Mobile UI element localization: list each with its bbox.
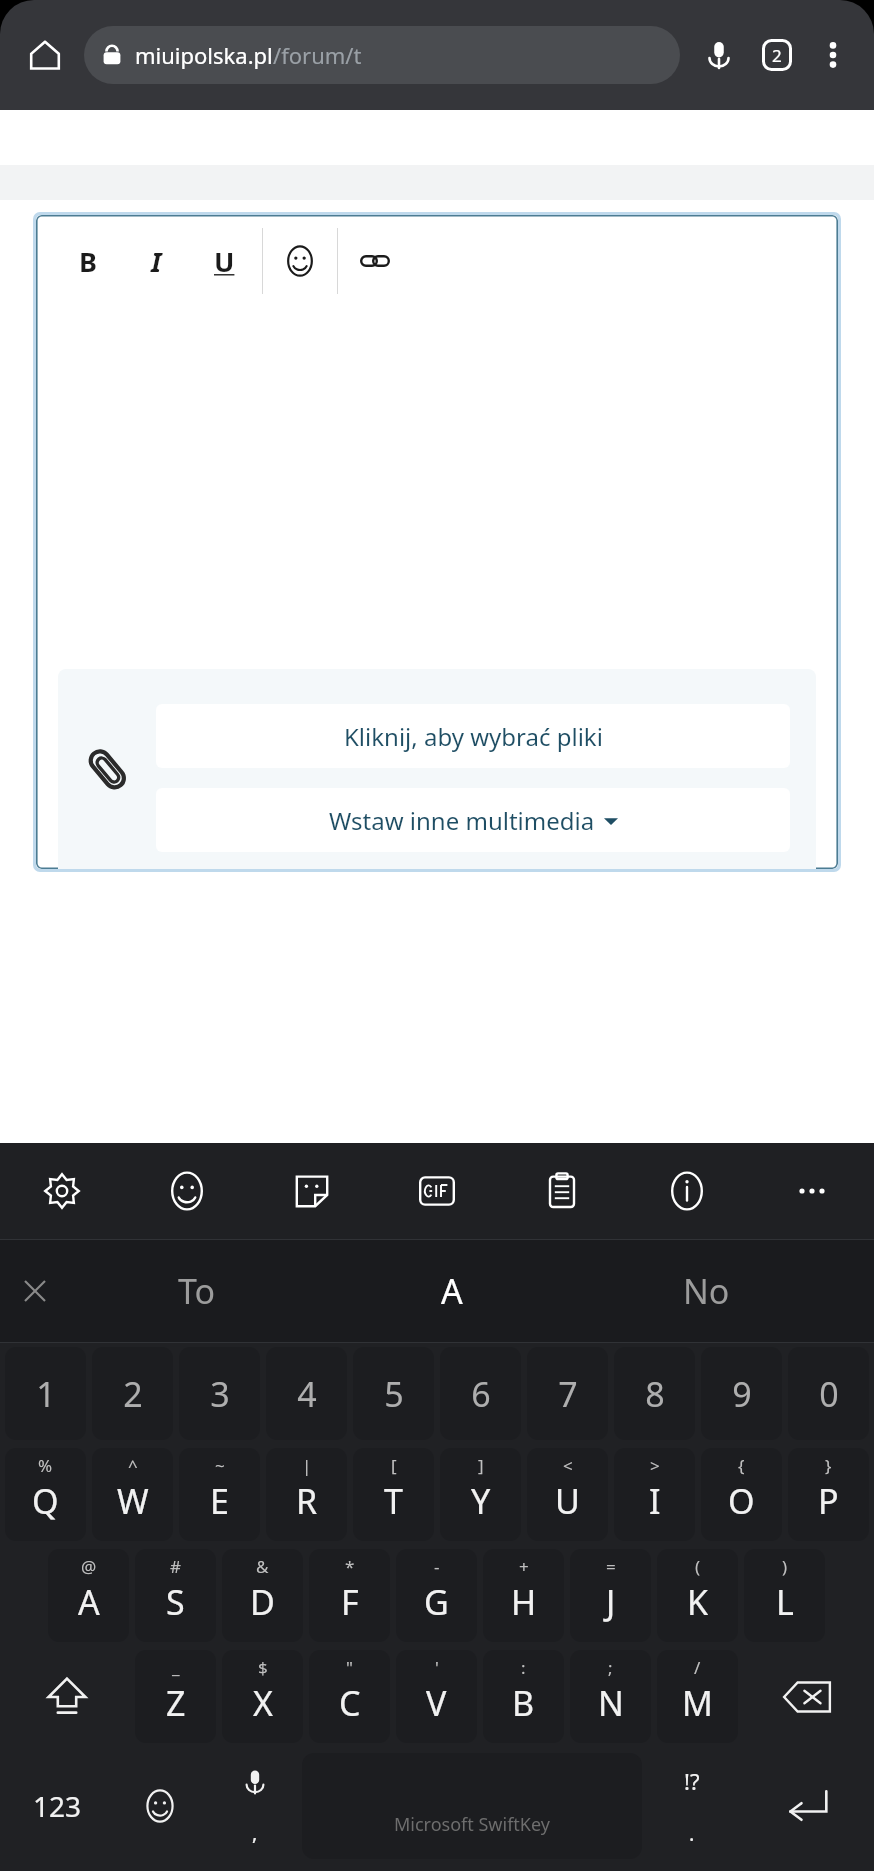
button[interactable]: 3 [179, 1347, 260, 1440]
staticText: : [521, 1656, 526, 1679]
button[interactable]: More options [806, 28, 860, 82]
staticText: $ [258, 1656, 268, 1679]
button[interactable]: 123 [2, 1747, 112, 1865]
button[interactable]: < [527, 1448, 608, 1541]
button[interactable]: Stickers [249, 1143, 374, 1239]
staticText: 1 [36, 1371, 56, 1417]
button[interactable]: To [70, 1239, 324, 1343]
button[interactable]: 9 [701, 1347, 782, 1440]
button[interactable]: @ [48, 1549, 129, 1642]
button[interactable]: * [309, 1549, 390, 1642]
staticText: + [519, 1555, 529, 1578]
button[interactable]: - [396, 1549, 477, 1642]
staticText: 2 [123, 1371, 143, 1417]
button[interactable]: Wstaw inne multimedia [156, 788, 790, 852]
button[interactable]: Space [302, 1753, 642, 1859]
staticText: & [256, 1555, 269, 1578]
button[interactable]: Insert link [342, 228, 408, 294]
staticText: R [296, 1478, 318, 1524]
button[interactable]: U [190, 228, 258, 294]
button[interactable]: 1 [5, 1347, 86, 1440]
button[interactable]: 2 [92, 1347, 173, 1440]
button[interactable]: ; [570, 1650, 651, 1743]
staticText: 0 [819, 1371, 839, 1417]
staticText: Microsoft SwiftKey [394, 1812, 550, 1837]
button[interactable]: B [54, 228, 122, 294]
button[interactable]: Kliknij, aby wybrać pliki [156, 704, 790, 768]
staticText: { [738, 1454, 745, 1477]
button[interactable]: 0 [788, 1347, 869, 1440]
button[interactable]: Home [14, 24, 76, 86]
button[interactable]: More [749, 1143, 874, 1239]
button[interactable]: 8 [614, 1347, 695, 1440]
button[interactable]: Emoji [267, 228, 333, 294]
button[interactable]: Emoji [124, 1143, 249, 1239]
button[interactable]: ' [396, 1650, 477, 1743]
button[interactable]: Info [624, 1143, 749, 1239]
button[interactable]: % [5, 1448, 86, 1541]
staticText: M [682, 1680, 713, 1726]
staticText: F [341, 1579, 359, 1625]
button[interactable]: 5 [353, 1347, 434, 1440]
button[interactable]: Close suggestions [0, 1239, 70, 1343]
button[interactable]: Tabs [748, 26, 806, 84]
button[interactable]: ~ [179, 1448, 260, 1541]
button[interactable]: | [266, 1448, 347, 1541]
staticText: P [818, 1478, 839, 1524]
button[interactable]: = [570, 1549, 651, 1642]
staticText: K [687, 1579, 709, 1625]
button[interactable]: Clipboard [499, 1143, 624, 1239]
button[interactable]: GIF [374, 1143, 499, 1239]
button[interactable]: Emoji keyboard [112, 1747, 207, 1865]
button[interactable]: 4 [266, 1347, 347, 1440]
staticText: B [79, 243, 97, 280]
button[interactable]: # [135, 1549, 216, 1642]
button[interactable]: 7 [527, 1347, 608, 1440]
button[interactable]: !? [642, 1747, 742, 1865]
staticText: 123 [33, 1787, 82, 1825]
button[interactable]: { [701, 1448, 782, 1541]
button[interactable]: & [222, 1549, 303, 1642]
button[interactable]: ^ [92, 1448, 173, 1541]
staticText: | [302, 1454, 312, 1477]
staticText: } [825, 1454, 832, 1477]
button[interactable]: ) [744, 1549, 825, 1642]
staticText: @ [81, 1555, 97, 1578]
staticText: A [78, 1579, 100, 1625]
staticText: !? [684, 1766, 700, 1796]
staticText: X [253, 1680, 273, 1726]
button[interactable]: " [309, 1650, 390, 1743]
staticText: H [511, 1579, 537, 1625]
staticText: B [512, 1680, 535, 1726]
staticText: 4 [297, 1371, 317, 1417]
staticText: N [598, 1680, 624, 1726]
button[interactable]: [ [353, 1448, 434, 1541]
button[interactable]: Voice input [207, 1747, 302, 1865]
button[interactable]: : [483, 1650, 564, 1743]
button[interactable]: / [657, 1650, 738, 1743]
button[interactable]: Backspace [741, 1646, 872, 1747]
button[interactable]: } [788, 1448, 869, 1541]
button[interactable]: + [483, 1549, 564, 1642]
button[interactable]: No [579, 1239, 834, 1343]
staticText: [ [391, 1454, 397, 1477]
button[interactable]: Enter [742, 1747, 872, 1865]
staticText: # [170, 1555, 181, 1578]
staticText: 7 [558, 1371, 578, 1417]
button[interactable]: > [614, 1448, 695, 1541]
button[interactable]: A [324, 1239, 579, 1343]
button[interactable]: ] [440, 1448, 521, 1541]
button[interactable]: Settings [0, 1143, 124, 1239]
button[interactable]: $ [222, 1650, 303, 1743]
staticText: % [38, 1454, 53, 1477]
button[interactable]: Voice search [690, 26, 748, 84]
button[interactable]: ( [657, 1549, 738, 1642]
staticText: . [689, 1820, 695, 1847]
button[interactable]: _ [135, 1650, 216, 1743]
button[interactable]: I [122, 228, 190, 294]
button[interactable]: Shift [2, 1646, 132, 1747]
staticText: U [214, 243, 235, 280]
button[interactable]: 6 [440, 1347, 521, 1440]
button[interactable]: miuipolska.pl [84, 26, 680, 84]
staticText: W [117, 1478, 149, 1524]
